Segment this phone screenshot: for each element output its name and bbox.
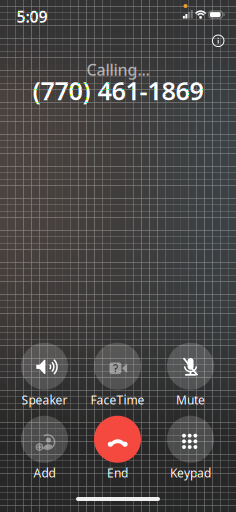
staticText: Keypad: [170, 465, 211, 481]
button[interactable]: Add: [9, 416, 79, 483]
staticText: Speaker: [21, 392, 67, 408]
staticText: End: [107, 465, 128, 481]
staticText: Add: [33, 465, 55, 481]
button[interactable]: Call details: [203, 26, 233, 56]
button[interactable]: Speaker: [9, 343, 79, 410]
button[interactable]: Mute: [155, 343, 225, 410]
button[interactable]: FaceTime: [82, 343, 152, 410]
staticText: Calling...: [86, 59, 149, 80]
staticText: Mute: [176, 392, 205, 408]
button[interactable]: Keypad: [155, 416, 225, 483]
staticText: FaceTime: [90, 392, 144, 408]
button[interactable]: End: [82, 416, 152, 483]
staticText: (770) 461-1869: [32, 74, 203, 107]
staticText: 5:09: [16, 6, 47, 27]
